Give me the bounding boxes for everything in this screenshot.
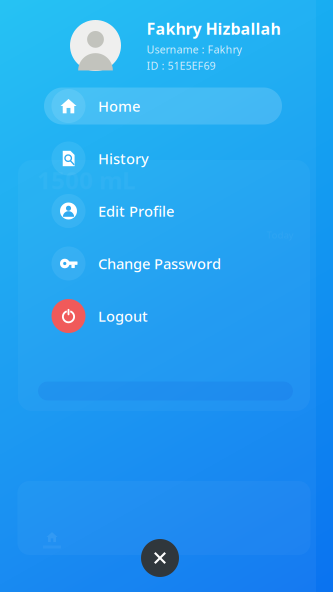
button[interactable]: Home <box>44 87 282 124</box>
staticText: ID : 51E5EF69 <box>146 58 215 73</box>
button[interactable]: Edit Profile <box>44 192 282 229</box>
staticText: Username : Fakhry <box>146 42 241 56</box>
staticText: Fakhry Hizballah <box>146 18 280 39</box>
button[interactable]: Change Password <box>44 245 282 282</box>
staticText: 1500 mL <box>37 164 135 196</box>
button[interactable]: History <box>44 140 282 177</box>
button[interactable]: Logout <box>44 297 282 334</box>
button[interactable]: Close <box>141 539 179 577</box>
staticText: Change Password <box>98 254 221 273</box>
staticText: Edit Profile <box>98 201 174 221</box>
staticText: History <box>98 149 149 168</box>
staticText: Logout <box>98 306 148 326</box>
staticText: Home <box>98 96 140 116</box>
